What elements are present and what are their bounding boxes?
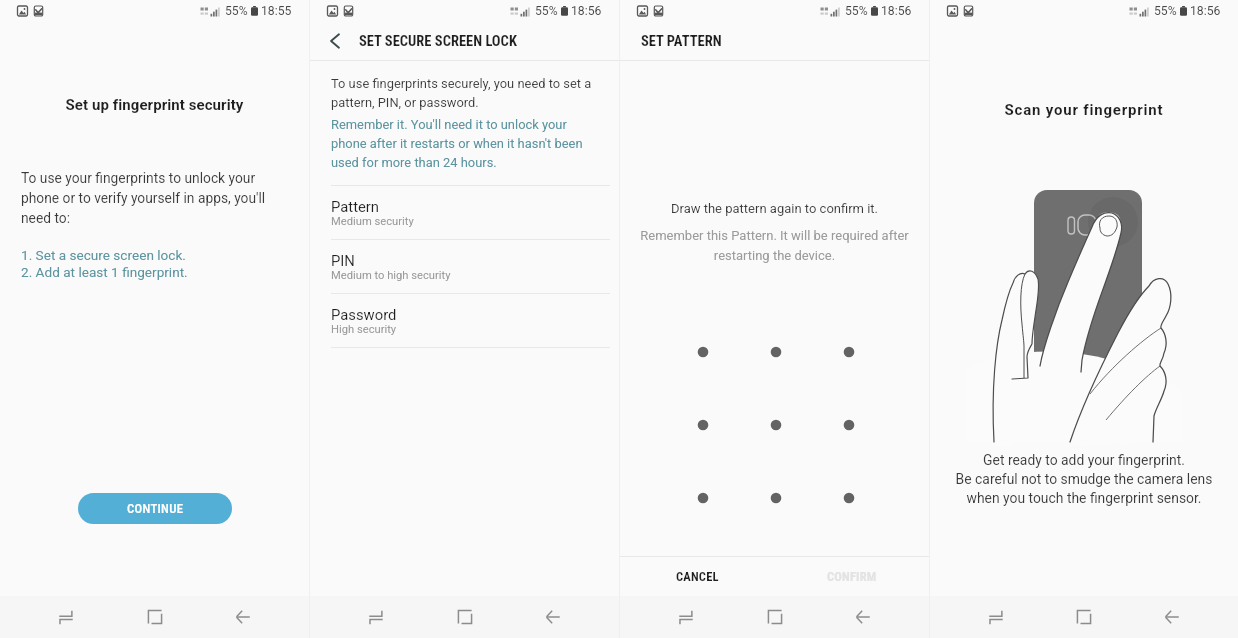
staticText: PIN — [331, 252, 355, 269]
staticText: Password — [331, 306, 397, 323]
staticText: To use your fingerprints to unlock your … — [21, 170, 266, 226]
staticText: Medium security — [331, 215, 414, 228]
staticText: CONFIRM — [827, 569, 877, 584]
staticText: Draw the pattern again to confirm it. — [620, 201, 929, 216]
staticText: 55% — [535, 4, 558, 18]
button[interactable]: Navigate up — [310, 22, 359, 60]
staticText: Pattern — [331, 198, 380, 215]
staticText: Set up fingerprint security — [0, 96, 309, 114]
button[interactable]: Back — [1150, 596, 1194, 638]
staticText: Remember it. You'll need it to unlock yo… — [331, 117, 583, 171]
button[interactable]: CONTINUE — [78, 493, 232, 524]
button[interactable]: Home — [1062, 596, 1106, 638]
staticText: 18:56 — [1190, 4, 1221, 18]
staticText: SET PATTERN — [641, 33, 722, 50]
button[interactable]: Home — [443, 596, 487, 638]
button[interactable]: Recent apps — [974, 596, 1018, 638]
staticText: To use fingerprints securely, you need t… — [331, 76, 592, 111]
button[interactable]: Home — [753, 596, 797, 638]
button[interactable]: Recent apps — [664, 596, 708, 638]
button[interactable]: Back — [841, 596, 885, 638]
button[interactable]: CONFIRM — [774, 557, 929, 596]
staticText: SET SECURE SCREEN LOCK — [359, 33, 517, 50]
staticText: 18:56 — [571, 4, 602, 18]
staticText: 55% — [225, 4, 248, 18]
staticText: 55% — [845, 4, 868, 18]
staticText: CONTINUE — [127, 501, 184, 516]
button[interactable]: Back — [531, 596, 575, 638]
staticText: 18:56 — [881, 4, 912, 18]
staticText: Scan your fingerprint — [930, 101, 1238, 119]
button[interactable]: PIN — [310, 240, 619, 294]
staticText: Remember this Pattern. It will be requir… — [620, 228, 929, 263]
button[interactable]: Recent apps — [354, 596, 398, 638]
button[interactable]: CANCEL — [620, 557, 774, 596]
staticText: 18:55 — [261, 4, 292, 18]
button[interactable]: Pattern — [310, 186, 619, 240]
button[interactable]: Recent apps — [44, 596, 88, 638]
button[interactable]: Back — [221, 596, 265, 638]
button[interactable]: Password — [310, 294, 619, 348]
staticText: 55% — [1154, 4, 1177, 18]
staticText: 1. Set a secure screen lock. 2. Add at l… — [21, 247, 188, 280]
staticText: Get ready to add your fingerprint. Be ca… — [930, 452, 1238, 507]
staticText: CANCEL — [676, 569, 719, 584]
button[interactable]: Home — [133, 596, 177, 638]
staticText: High security — [331, 323, 397, 336]
staticText: Medium to high security — [331, 269, 451, 282]
